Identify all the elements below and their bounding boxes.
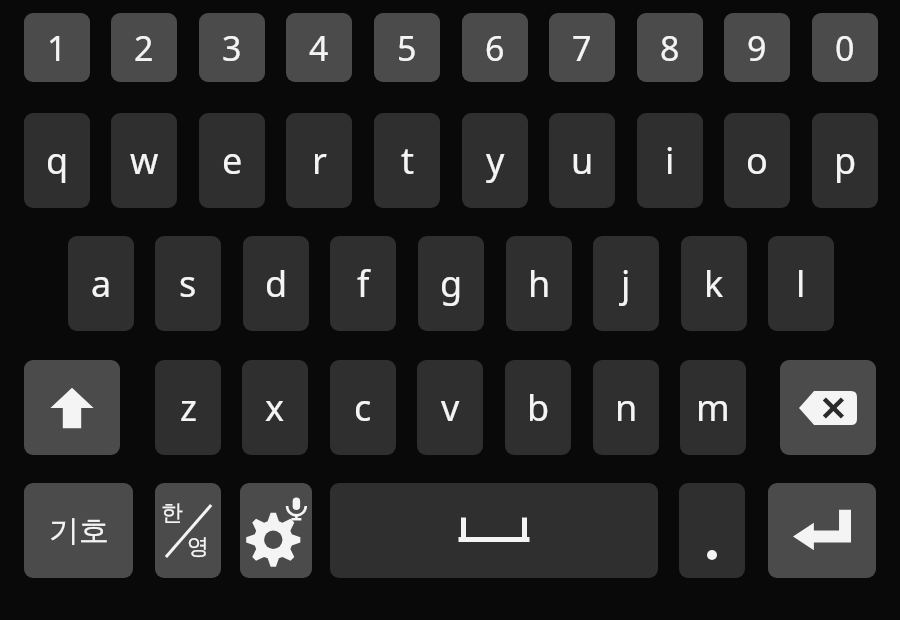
button[interactable]: v bbox=[417, 360, 483, 455]
staticText: c bbox=[354, 383, 372, 432]
button[interactable]: f bbox=[330, 236, 396, 331]
button[interactable]: c bbox=[330, 360, 396, 455]
button[interactable]: m bbox=[680, 360, 746, 455]
staticText: k bbox=[704, 259, 724, 308]
staticText: g bbox=[440, 259, 463, 308]
button[interactable]: 기호 bbox=[24, 483, 133, 578]
staticText: p bbox=[834, 136, 857, 185]
staticText: o bbox=[746, 136, 768, 185]
staticText: 9 bbox=[747, 25, 767, 71]
button[interactable]: z bbox=[155, 360, 221, 455]
button[interactable]: b bbox=[505, 360, 571, 455]
button[interactable]: g bbox=[418, 236, 484, 331]
button[interactable]: i bbox=[637, 113, 703, 208]
button[interactable]: 6 bbox=[462, 13, 528, 82]
staticText: q bbox=[46, 136, 69, 185]
staticText: h bbox=[528, 259, 551, 308]
staticText: d bbox=[265, 259, 288, 308]
button[interactable]: d bbox=[243, 236, 309, 331]
button[interactable]: j bbox=[593, 236, 659, 331]
button[interactable]: 8 bbox=[637, 13, 703, 82]
button[interactable]: t bbox=[374, 113, 440, 208]
button[interactable]: o bbox=[724, 113, 790, 208]
button[interactable]: r bbox=[286, 113, 352, 208]
button[interactable]: 3 bbox=[199, 13, 265, 82]
button[interactable]: q bbox=[24, 113, 90, 208]
staticText: z bbox=[180, 383, 197, 432]
button[interactable]: Korean English toggle bbox=[155, 483, 221, 578]
button[interactable]: 2 bbox=[111, 13, 177, 82]
button[interactable]: 5 bbox=[374, 13, 440, 82]
button[interactable]: s bbox=[155, 236, 221, 331]
button[interactable]: a bbox=[68, 236, 134, 331]
button[interactable]: l bbox=[768, 236, 834, 331]
staticText: 8 bbox=[660, 25, 680, 71]
button[interactable]: h bbox=[506, 236, 572, 331]
button[interactable]: 9 bbox=[724, 13, 790, 82]
staticText: 영 bbox=[187, 533, 209, 561]
button[interactable]: y bbox=[462, 113, 528, 208]
staticText: 0 bbox=[835, 25, 855, 71]
button[interactable]: Shift bbox=[24, 360, 120, 455]
staticText: u bbox=[571, 136, 594, 185]
staticText: 2 bbox=[134, 25, 154, 71]
button[interactable]: p bbox=[812, 113, 878, 208]
staticText: a bbox=[91, 259, 112, 308]
staticText: 4 bbox=[309, 25, 329, 71]
staticText: j bbox=[621, 259, 631, 308]
staticText: m bbox=[696, 383, 730, 432]
button[interactable]: n bbox=[593, 360, 659, 455]
button[interactable]: Backspace bbox=[780, 360, 876, 455]
staticText: n bbox=[615, 383, 638, 432]
button[interactable]: 7 bbox=[549, 13, 615, 82]
staticText: s bbox=[179, 259, 197, 308]
staticText: v bbox=[441, 383, 460, 432]
staticText: 1 bbox=[47, 25, 67, 71]
button[interactable]: 1 bbox=[24, 13, 90, 82]
staticText: t bbox=[401, 136, 414, 185]
button[interactable]: 4 bbox=[286, 13, 352, 82]
staticText: r bbox=[312, 136, 327, 185]
staticText: l bbox=[796, 259, 806, 308]
button[interactable]: u bbox=[549, 113, 615, 208]
button[interactable] bbox=[679, 483, 745, 578]
button[interactable]: Settings and voice input bbox=[240, 483, 312, 578]
button[interactable]: k bbox=[681, 236, 747, 331]
staticText: 기호 bbox=[49, 512, 109, 550]
staticText: 6 bbox=[485, 25, 505, 71]
staticText: 7 bbox=[572, 25, 592, 71]
button[interactable]: Space bbox=[330, 483, 658, 578]
staticText: e bbox=[222, 136, 243, 185]
button[interactable]: Enter bbox=[768, 483, 876, 578]
button[interactable]: x bbox=[242, 360, 308, 455]
staticText: 5 bbox=[397, 25, 417, 71]
button[interactable]: 0 bbox=[812, 13, 878, 82]
staticText: f bbox=[357, 259, 370, 308]
staticText: b bbox=[527, 383, 550, 432]
staticText: x bbox=[265, 383, 285, 432]
button[interactable]: e bbox=[199, 113, 265, 208]
staticText: i bbox=[665, 136, 675, 185]
button[interactable]: w bbox=[111, 113, 177, 208]
staticText: 3 bbox=[222, 25, 242, 71]
staticText: y bbox=[486, 136, 505, 185]
staticText: w bbox=[130, 136, 159, 185]
staticText: 한 bbox=[161, 499, 183, 527]
